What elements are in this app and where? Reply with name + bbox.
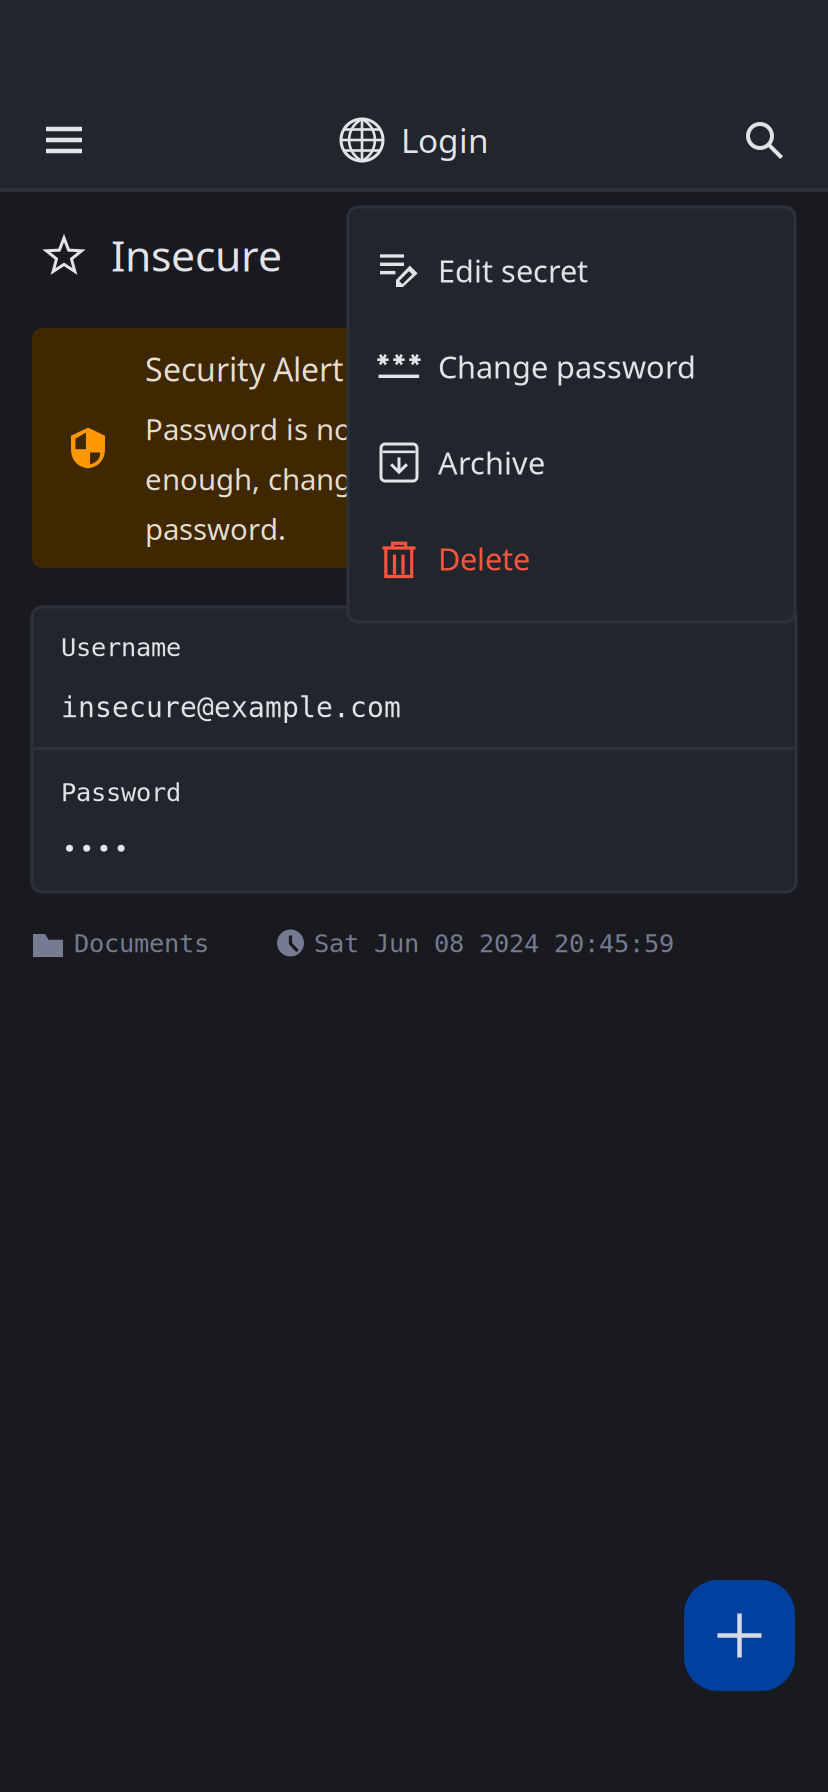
staticText: Edit secret bbox=[438, 250, 588, 291]
button[interactable]: Archive bbox=[348, 414, 795, 510]
staticText: Password bbox=[61, 778, 181, 807]
staticText: Archive bbox=[438, 442, 545, 483]
staticText: enough, change your bbox=[145, 459, 440, 498]
staticText: password. bbox=[145, 509, 286, 548]
staticText: Username bbox=[61, 633, 181, 662]
button[interactable]: Edit secret bbox=[348, 222, 795, 318]
staticText: Security Alert bbox=[145, 348, 344, 390]
staticText: insecure@example.com bbox=[61, 692, 401, 724]
staticText: Delete bbox=[438, 538, 530, 579]
staticText: Login bbox=[401, 118, 489, 162]
staticText: Change password bbox=[438, 346, 696, 387]
button[interactable]: Add secret bbox=[684, 1580, 795, 1691]
button[interactable]: Delete bbox=[348, 510, 795, 606]
staticText: Password is not strong bbox=[145, 409, 462, 448]
staticText: Insecure bbox=[111, 227, 282, 283]
staticText: Sat Jun 08 2024 20:45:59 bbox=[314, 929, 674, 958]
button[interactable]: Menu bbox=[26, 97, 102, 183]
button[interactable]: Change password bbox=[348, 318, 795, 414]
staticText: Documents bbox=[74, 929, 209, 958]
button[interactable]: Search bbox=[726, 97, 802, 183]
